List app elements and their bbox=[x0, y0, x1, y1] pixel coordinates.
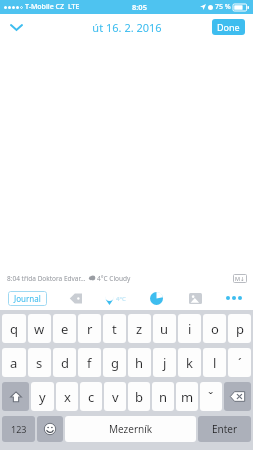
button[interactable]: r bbox=[78, 314, 101, 343]
staticText: út 16. 2. 2016 bbox=[92, 20, 162, 35]
staticText: n bbox=[159, 388, 168, 406]
staticText: M↓ bbox=[235, 275, 245, 282]
staticText: z bbox=[136, 320, 143, 338]
button[interactable]: s bbox=[28, 348, 51, 377]
button[interactable]: l bbox=[203, 348, 226, 377]
button[interactable]: t bbox=[103, 314, 126, 343]
button[interactable]: 4°C bbox=[103, 292, 128, 305]
staticText: 123 bbox=[11, 423, 27, 435]
button[interactable]: c bbox=[80, 382, 102, 411]
staticText: y bbox=[39, 388, 46, 406]
button[interactable]: p bbox=[228, 314, 251, 343]
staticText: u bbox=[160, 320, 169, 338]
staticText: a bbox=[10, 354, 18, 372]
staticText: 4°C bbox=[116, 295, 126, 303]
staticText: l bbox=[213, 354, 217, 372]
staticText: p bbox=[236, 320, 244, 338]
staticText: w bbox=[34, 320, 45, 338]
staticText: v bbox=[112, 388, 119, 406]
button[interactable]: i bbox=[178, 314, 201, 343]
button[interactable]: Backspace bbox=[224, 382, 251, 411]
button[interactable]: Done bbox=[212, 19, 245, 35]
staticText: b bbox=[135, 388, 143, 406]
staticText: ´ bbox=[238, 354, 242, 372]
button[interactable]: e bbox=[53, 314, 76, 343]
button[interactable]: Tags bbox=[64, 287, 86, 309]
staticText: 8:05 bbox=[132, 2, 147, 12]
staticText: Enter bbox=[212, 422, 238, 436]
staticText: m bbox=[181, 388, 194, 406]
staticText: Done bbox=[217, 21, 240, 33]
button[interactable]: 123 bbox=[2, 416, 35, 442]
button[interactable]: Enter bbox=[198, 416, 251, 442]
button[interactable]: Markdown bbox=[233, 274, 247, 283]
staticText: x bbox=[64, 388, 71, 406]
staticText: f bbox=[87, 354, 92, 372]
staticText: q bbox=[10, 320, 18, 338]
button[interactable]: x bbox=[56, 382, 78, 411]
button[interactable]: n bbox=[152, 382, 174, 411]
staticText: g bbox=[111, 354, 119, 372]
staticText: h bbox=[135, 354, 144, 372]
button[interactable]: f bbox=[78, 348, 101, 377]
button[interactable]: Journal bbox=[8, 291, 47, 306]
button[interactable]: d bbox=[53, 348, 76, 377]
staticText: i bbox=[188, 320, 192, 338]
button[interactable]: Collapse bbox=[4, 15, 28, 39]
button[interactable]: g bbox=[103, 348, 126, 377]
staticText: e bbox=[61, 320, 69, 338]
button[interactable]: y bbox=[31, 382, 54, 411]
button[interactable]: Time bbox=[145, 287, 167, 309]
button[interactable]: More options bbox=[223, 287, 245, 309]
button[interactable]: k bbox=[178, 348, 201, 377]
button[interactable]: Emoji bbox=[37, 416, 63, 442]
button[interactable]: h bbox=[128, 348, 151, 377]
button[interactable]: ˇ bbox=[200, 382, 222, 411]
staticText: s bbox=[36, 354, 43, 372]
staticText: r bbox=[87, 320, 93, 338]
button[interactable]: q bbox=[2, 314, 26, 343]
staticText: c bbox=[88, 388, 95, 406]
button[interactable]: Mezerník bbox=[65, 416, 196, 442]
staticText: LTE bbox=[68, 2, 80, 12]
staticText: 4°C Cloudy bbox=[97, 274, 131, 283]
staticText: ˇ bbox=[208, 388, 214, 406]
staticText: Mezerník bbox=[109, 422, 153, 436]
button[interactable]: w bbox=[28, 314, 51, 343]
staticText: j bbox=[163, 354, 167, 372]
staticText: o bbox=[211, 320, 219, 338]
button[interactable]: o bbox=[203, 314, 226, 343]
button[interactable]: u bbox=[153, 314, 176, 343]
button[interactable]: Photo bbox=[184, 287, 206, 309]
staticText: d bbox=[61, 354, 69, 372]
button[interactable]: j bbox=[153, 348, 176, 377]
staticText: T-Mobile CZ bbox=[25, 2, 65, 12]
button[interactable]: m bbox=[176, 382, 198, 411]
button[interactable]: z bbox=[128, 314, 151, 343]
staticText: t bbox=[112, 320, 117, 338]
button[interactable]: v bbox=[104, 382, 126, 411]
button[interactable]: Shift bbox=[2, 382, 29, 411]
staticText: 8:04 třída Doktora Edvar... bbox=[7, 274, 86, 283]
staticText: Journal bbox=[14, 293, 41, 304]
button[interactable]: b bbox=[128, 382, 150, 411]
staticText: 75 % bbox=[215, 2, 231, 12]
staticText: k bbox=[186, 354, 193, 372]
button[interactable]: ´ bbox=[228, 348, 251, 377]
button[interactable]: a bbox=[2, 348, 26, 377]
